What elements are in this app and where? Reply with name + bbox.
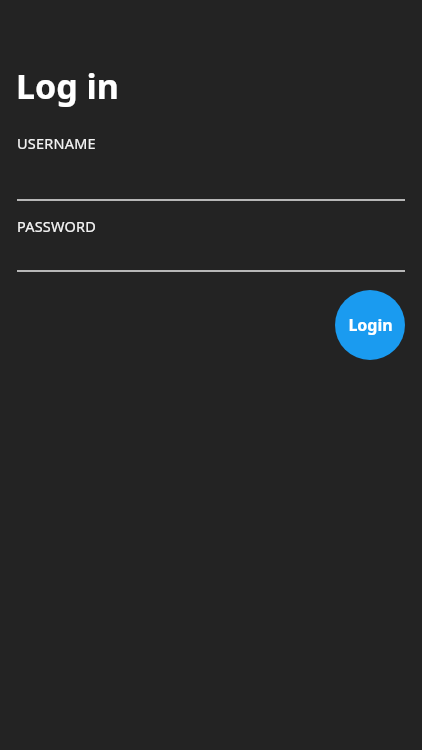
- staticText: Log in: [16, 63, 119, 109]
- staticText: PASSWORD: [17, 216, 97, 236]
- staticText: Login: [348, 314, 393, 336]
- button[interactable]: [17, 155, 405, 201]
- button[interactable]: [17, 226, 405, 272]
- button[interactable]: Login: [335, 290, 405, 360]
- staticText: USERNAME: [17, 133, 96, 153]
